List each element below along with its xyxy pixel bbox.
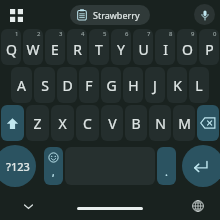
button[interactable]: Period: [157, 147, 176, 185]
button[interactable]: L: [189, 67, 209, 103]
staticText: K: [173, 76, 182, 95]
staticText: ?123: [6, 159, 30, 174]
staticText: U: [138, 40, 149, 59]
button[interactable]: S: [34, 67, 55, 103]
button[interactable]: Emoji and comma: [44, 147, 63, 185]
staticText: N: [155, 114, 166, 133]
button[interactable]: B: [125, 105, 147, 141]
staticText: 4: [81, 30, 85, 38]
staticText: D: [62, 76, 73, 95]
staticText: L: [195, 76, 203, 95]
button[interactable]: Enter: [182, 145, 220, 187]
button[interactable]: Backspace: [197, 105, 219, 141]
button[interactable]: Change language: [188, 196, 208, 216]
button[interactable]: A: [11, 67, 32, 103]
button[interactable]: 9: [177, 29, 197, 65]
button[interactable]: Z: [26, 105, 49, 141]
staticText: ,: [52, 165, 55, 179]
staticText: 1: [15, 30, 19, 38]
button[interactable]: N: [149, 105, 171, 141]
staticText: G: [106, 76, 117, 95]
button[interactable]: Voice input: [194, 4, 215, 25]
staticText: W: [26, 40, 40, 59]
staticText: 3: [59, 30, 63, 38]
staticText: O: [182, 40, 193, 59]
button[interactable]: 5: [89, 29, 109, 65]
staticText: V: [108, 114, 117, 133]
staticText: A: [17, 76, 26, 95]
staticText: M: [178, 114, 191, 133]
button[interactable]: Hide keyboard: [18, 196, 38, 216]
staticText: 8: [169, 30, 173, 38]
button[interactable]: C: [76, 105, 99, 141]
button[interactable]: 4: [67, 29, 87, 65]
button[interactable]: Keyboard layouts: [4, 3, 28, 27]
staticText: 2: [37, 30, 41, 38]
button[interactable]: 2: [23, 29, 43, 65]
staticText: B: [131, 114, 141, 133]
button[interactable]: 8: [155, 29, 175, 65]
staticText: C: [83, 114, 92, 133]
staticText: 0: [213, 30, 217, 38]
button[interactable]: H: [123, 67, 143, 103]
button[interactable]: J: [145, 67, 165, 103]
staticText: J: [153, 76, 157, 95]
staticText: 9: [191, 30, 195, 38]
button[interactable]: V: [101, 105, 123, 141]
button[interactable]: Shift: [1, 105, 24, 141]
staticText: R: [73, 40, 82, 59]
staticText: S: [41, 76, 49, 95]
staticText: F: [85, 76, 93, 95]
button[interactable]: 3: [45, 29, 65, 65]
staticText: .: [165, 164, 168, 179]
button[interactable]: Strawberry: [70, 5, 150, 25]
button[interactable]: K: [167, 67, 187, 103]
button[interactable]: 0: [199, 29, 219, 65]
button[interactable]: 7: [133, 29, 153, 65]
staticText: 5: [103, 30, 107, 38]
staticText: E: [51, 40, 59, 59]
button[interactable]: ?123: [0, 145, 36, 187]
staticText: I: [163, 40, 168, 59]
staticText: T: [95, 40, 103, 59]
button[interactable]: M: [173, 105, 195, 141]
button[interactable]: F: [79, 67, 99, 103]
staticText: Z: [33, 114, 42, 133]
button[interactable]: 1: [1, 29, 21, 65]
staticText: P: [205, 40, 214, 59]
staticText: Strawberry: [93, 9, 140, 21]
button[interactable]: D: [57, 67, 77, 103]
staticText: 7: [147, 30, 151, 38]
staticText: Y: [117, 40, 125, 59]
staticText: 6: [125, 30, 129, 38]
staticText: Q: [6, 40, 17, 59]
staticText: H: [128, 76, 139, 95]
button[interactable]: G: [101, 67, 121, 103]
staticText: X: [58, 114, 67, 133]
button[interactable]: 6: [111, 29, 131, 65]
button[interactable]: X: [51, 105, 74, 141]
